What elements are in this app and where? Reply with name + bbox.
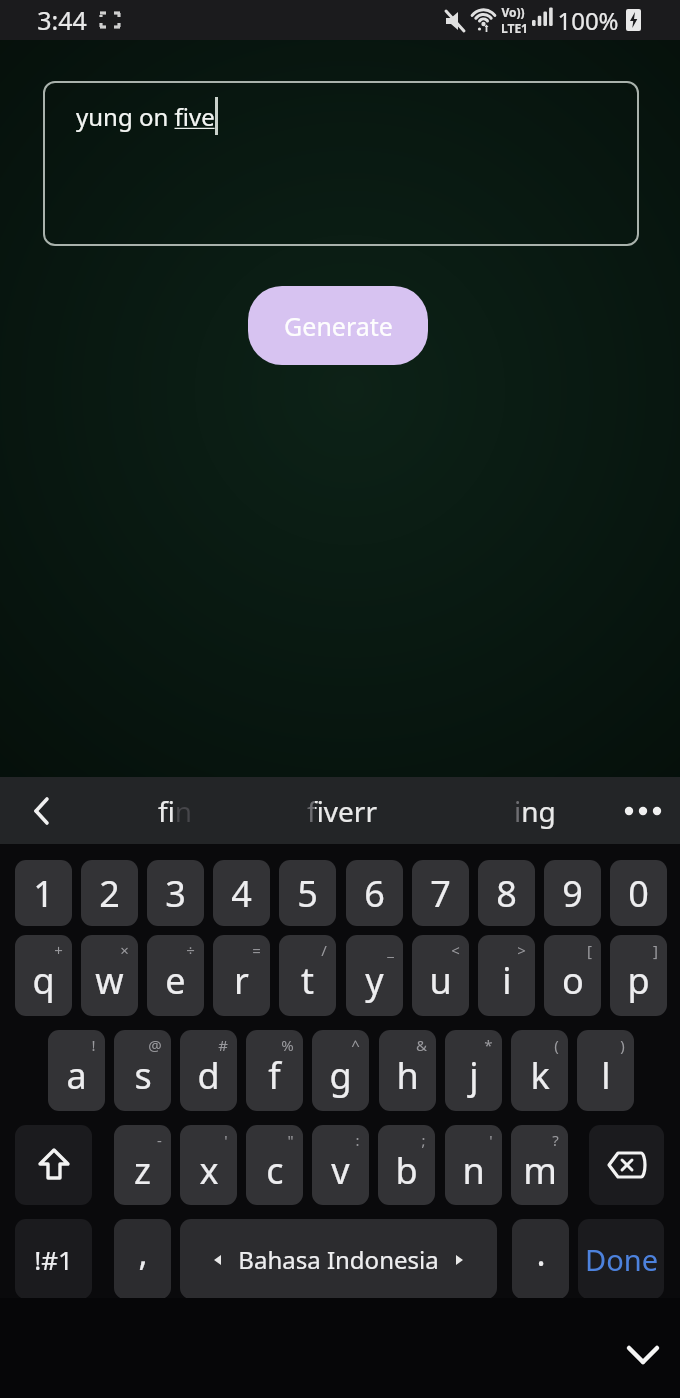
staticText: 7 bbox=[430, 869, 451, 918]
button[interactable]: f bbox=[246, 1030, 303, 1111]
staticText: ? bbox=[552, 1130, 559, 1150]
button[interactable]: 9 bbox=[544, 860, 601, 926]
staticText: ing bbox=[514, 792, 556, 830]
button[interactable]: x bbox=[180, 1125, 237, 1205]
staticText: / bbox=[321, 940, 327, 960]
button[interactable]: n bbox=[445, 1125, 502, 1205]
button[interactable]: z bbox=[114, 1125, 171, 1205]
staticText: ^ bbox=[351, 1035, 360, 1055]
button[interactable]: 2 bbox=[81, 860, 138, 926]
button[interactable]: o bbox=[544, 935, 601, 1016]
staticText: ( bbox=[554, 1035, 559, 1055]
staticText: v bbox=[331, 1146, 350, 1195]
button[interactable]: 6 bbox=[346, 860, 403, 926]
button[interactable]: fin bbox=[115, 777, 235, 844]
staticText: f bbox=[268, 1051, 281, 1100]
button[interactable]: v bbox=[312, 1125, 369, 1205]
staticText: @ bbox=[148, 1035, 162, 1055]
staticText: h bbox=[396, 1051, 419, 1100]
staticText: 5 bbox=[297, 869, 318, 918]
staticText: ) bbox=[620, 1035, 625, 1055]
button[interactable]: b bbox=[378, 1125, 435, 1205]
staticText: " bbox=[287, 1130, 294, 1150]
staticText: - bbox=[157, 1130, 162, 1150]
button[interactable]: , bbox=[114, 1219, 171, 1299]
button[interactable]: 8 bbox=[478, 860, 535, 926]
staticText: 1 bbox=[33, 869, 54, 918]
staticText: 0 bbox=[628, 869, 649, 918]
button[interactable]: k bbox=[511, 1030, 568, 1111]
staticText: 2 bbox=[99, 869, 120, 918]
button[interactable] bbox=[619, 789, 675, 833]
staticText: fiverr bbox=[307, 792, 378, 830]
button[interactable]: e bbox=[147, 935, 204, 1016]
button[interactable]: d bbox=[180, 1030, 237, 1111]
button[interactable]: h bbox=[379, 1030, 436, 1111]
button[interactable]: p bbox=[610, 935, 667, 1016]
staticText: 3:44 bbox=[37, 3, 87, 37]
staticText: u bbox=[429, 956, 452, 1005]
staticText: k bbox=[530, 1051, 550, 1100]
button[interactable]: . bbox=[512, 1219, 569, 1299]
staticText: Vo)) bbox=[501, 4, 525, 20]
button[interactable]: fiverr bbox=[280, 777, 404, 844]
staticText: yung on five bbox=[76, 100, 215, 133]
button[interactable]: m bbox=[511, 1125, 568, 1205]
button[interactable] bbox=[15, 1125, 92, 1205]
button[interactable]: l bbox=[577, 1030, 634, 1111]
button[interactable]: t bbox=[279, 935, 336, 1016]
button[interactable]: g bbox=[312, 1030, 369, 1111]
staticText: , bbox=[138, 1230, 148, 1276]
button[interactable]: Bahasa Indonesia bbox=[180, 1219, 497, 1299]
staticText: ] bbox=[653, 940, 658, 960]
staticText: ; bbox=[421, 1130, 426, 1150]
button[interactable]: r bbox=[213, 935, 270, 1016]
button[interactable]: u bbox=[412, 935, 469, 1016]
button[interactable]: Generate bbox=[248, 286, 428, 365]
button[interactable]: 1 bbox=[15, 860, 72, 926]
staticText: o bbox=[562, 956, 584, 1005]
button[interactable]: y bbox=[346, 935, 403, 1016]
button[interactable]: !#1 bbox=[15, 1219, 92, 1299]
staticText: 8 bbox=[496, 869, 517, 918]
button[interactable]: 0 bbox=[610, 860, 667, 926]
staticText: * bbox=[484, 1035, 493, 1055]
button[interactable]: 7 bbox=[412, 860, 469, 926]
staticText: j bbox=[469, 1051, 479, 1100]
button[interactable]: 5 bbox=[279, 860, 336, 926]
staticText: b bbox=[395, 1146, 418, 1195]
staticText: x bbox=[199, 1146, 219, 1195]
button[interactable]: c bbox=[246, 1125, 303, 1205]
staticText: i bbox=[502, 956, 512, 1005]
button[interactable]: i bbox=[478, 935, 535, 1016]
staticText: Done bbox=[585, 1240, 658, 1279]
staticText: 4 bbox=[231, 869, 252, 918]
staticText: z bbox=[134, 1146, 151, 1195]
button[interactable]: ing bbox=[475, 777, 595, 844]
staticText: LTE1 bbox=[501, 20, 528, 36]
button[interactable]: s bbox=[114, 1030, 171, 1111]
staticText: × bbox=[120, 940, 129, 960]
staticText: ' bbox=[224, 1130, 228, 1150]
button[interactable]: j bbox=[445, 1030, 502, 1111]
staticText: fin bbox=[158, 792, 193, 830]
button[interactable]: a bbox=[48, 1030, 105, 1111]
staticText: 6 bbox=[364, 869, 385, 918]
staticText: g bbox=[329, 1051, 352, 1100]
button[interactable]: w bbox=[81, 935, 138, 1016]
button[interactable] bbox=[20, 789, 64, 833]
staticText: > bbox=[517, 940, 526, 960]
staticText: l bbox=[601, 1051, 611, 1100]
staticText: m bbox=[523, 1146, 557, 1195]
button[interactable]: yung on five bbox=[43, 81, 639, 246]
staticText: c bbox=[266, 1146, 284, 1195]
button[interactable] bbox=[589, 1125, 664, 1205]
button[interactable]: 3 bbox=[147, 860, 204, 926]
button[interactable]: Done bbox=[578, 1219, 664, 1299]
staticText: w bbox=[95, 956, 124, 1005]
button[interactable]: q bbox=[15, 935, 72, 1016]
button[interactable] bbox=[618, 1336, 668, 1378]
staticText: Bahasa Indonesia bbox=[238, 1243, 439, 1276]
button[interactable]: 4 bbox=[213, 860, 270, 926]
staticText: = bbox=[252, 940, 261, 960]
